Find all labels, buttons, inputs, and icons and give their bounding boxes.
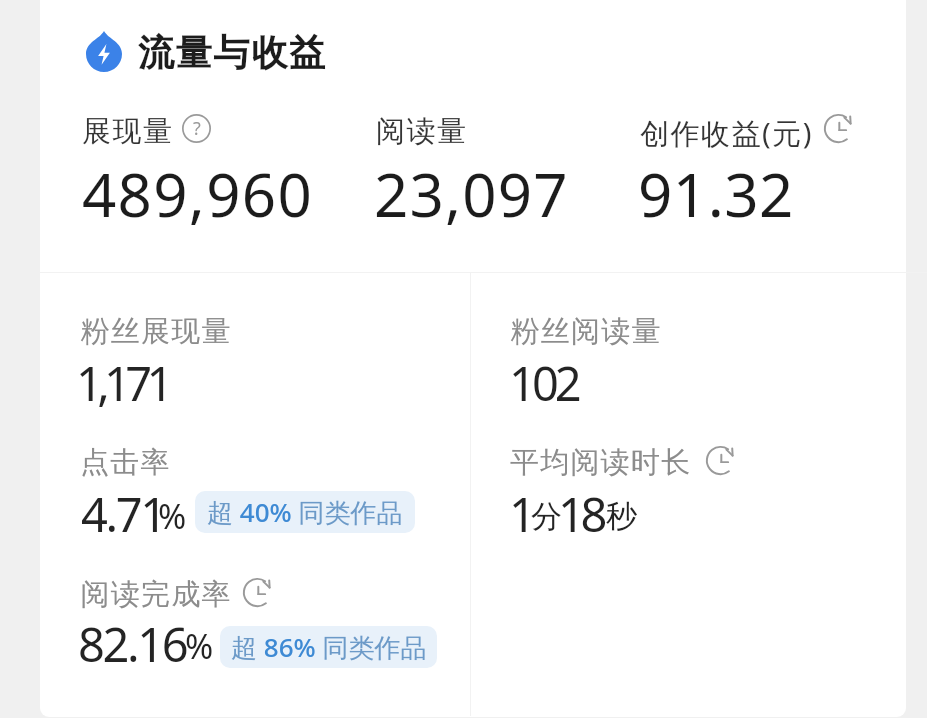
staticText: 超 86% 同类作品 <box>231 629 427 665</box>
staticText: 102 <box>509 351 578 415</box>
button[interactable]: 流量与收益 <box>80 21 330 71</box>
button[interactable]: 超 86% 同类作品 <box>220 626 437 668</box>
staticText: 粉丝阅读量 <box>510 313 661 350</box>
button[interactable]: 超 40% 同类作品 <box>195 491 415 533</box>
staticText: 流量与收益 <box>137 30 326 75</box>
staticText: 点击率 <box>80 444 171 481</box>
staticText: % <box>158 493 187 539</box>
staticText: ? <box>193 116 201 140</box>
staticText: 粉丝展现量 <box>80 313 231 350</box>
staticText: % <box>185 623 214 669</box>
staticText: 4.71 <box>81 482 165 546</box>
staticText: 平均阅读时长 <box>510 444 692 481</box>
staticText: 91.32 <box>638 153 794 235</box>
staticText: 阅读完成率 <box>80 576 231 613</box>
staticText: 82.16 <box>78 612 187 676</box>
staticText: 超 40% 同类作品 <box>207 494 403 530</box>
staticText: 创作收益(元) <box>640 113 813 153</box>
staticText: 1,171 <box>76 351 168 415</box>
staticText: 1 <box>509 482 536 546</box>
staticText: 489,960 <box>82 153 314 235</box>
staticText: 23,097 <box>374 153 569 235</box>
staticText: 秒 <box>606 497 637 536</box>
staticText: 18 <box>558 482 603 546</box>
staticText: 分 <box>531 497 562 536</box>
staticText: 展现量 <box>82 113 174 150</box>
staticText: 阅读量 <box>376 113 468 150</box>
